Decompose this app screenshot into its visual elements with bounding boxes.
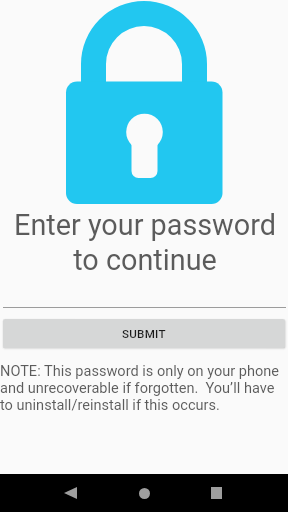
button[interactable]: SUBMIT — [3, 319, 285, 348]
staticText: NOTE: This password is only on your phon… — [0, 363, 286, 414]
button[interactable]: Recent apps — [192, 474, 240, 512]
button[interactable]: Back — [46, 474, 94, 512]
staticText: Enter your password to continue — [1, 208, 288, 277]
button[interactable]: Home — [120, 474, 168, 512]
staticText: SUBMIT — [122, 327, 166, 341]
